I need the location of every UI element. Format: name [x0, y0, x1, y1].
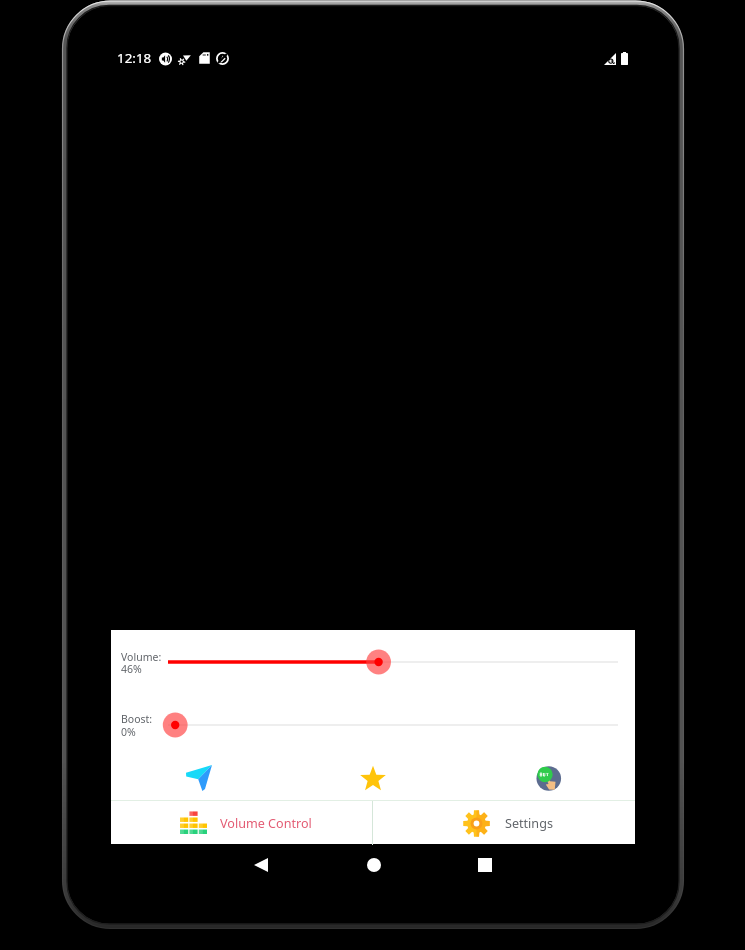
button[interactable]: Volume Control: [111, 801, 372, 845]
button[interactable]: Volume: 46% slider: [111, 640, 635, 684]
staticText: Boost:: [121, 712, 153, 726]
staticText: Settings: [505, 815, 553, 832]
staticText: 46%: [121, 662, 142, 676]
button[interactable]: Back: [243, 847, 279, 883]
button[interactable]: Settings: [373, 801, 635, 845]
staticText: 0%: [121, 725, 136, 739]
staticText: Volume:: [121, 650, 162, 664]
button[interactable]: Recents: [467, 847, 503, 883]
staticText: Volume Control: [220, 815, 312, 832]
button[interactable]: Boost: 0% slider: [111, 703, 635, 747]
button[interactable]: Home: [356, 847, 392, 883]
button[interactable]: Buy pro version: [527, 757, 569, 799]
button[interactable]: Share: [178, 757, 220, 799]
staticText: 12:18: [117, 49, 152, 67]
button[interactable]: Rate this app: [352, 757, 394, 799]
